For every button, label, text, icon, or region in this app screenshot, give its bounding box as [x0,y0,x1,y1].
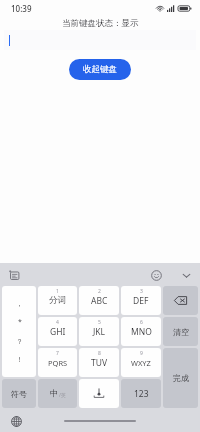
button[interactable]: Hide keyboard [177,266,195,284]
staticText: MNO [131,326,152,338]
staticText: ！ [16,355,23,364]
staticText: 10:39 [11,3,32,14]
button[interactable]: 2 [79,286,119,315]
button[interactable]: Emoji [147,266,165,284]
staticText: 2 [98,288,101,295]
staticText: ？ [16,337,23,346]
button[interactable]: 123 [121,379,161,408]
staticText: GHI [50,326,66,338]
staticText: PQRS [48,358,68,368]
button[interactable]: Punctuation [2,286,36,377]
staticText: ， [16,299,23,308]
button[interactable]: 6 [121,317,161,346]
staticText: 清空 [173,327,189,337]
staticText: JKL [93,326,106,338]
staticText: 6 [140,319,143,326]
staticText: /英 [59,392,66,399]
button[interactable]: 4 [38,317,77,346]
button[interactable]: Switch input language [9,414,23,428]
button[interactable]: Keyboard settings [5,266,23,284]
staticText: 8 [98,350,101,357]
staticText: 7 [56,350,59,357]
staticText: * [18,317,22,327]
button[interactable]: Backspace [163,286,198,315]
staticText: 3 [140,288,143,295]
staticText: 4 [56,319,59,326]
staticText: 收起键盘 [83,64,117,75]
staticText: 当前键盘状态：显示 [62,18,139,29]
button[interactable]: 完成 [163,348,198,408]
staticText: 符号 [11,389,27,399]
button[interactable] [4,30,196,50]
staticText: DEF [133,295,149,307]
button[interactable]: 5 [79,317,119,346]
button[interactable]: 7 [38,348,77,377]
staticText: 123 [134,388,149,400]
button[interactable]: 符号 [2,379,36,408]
button[interactable]: 1 [38,286,77,315]
button[interactable]: 中 [38,379,77,408]
button[interactable]: 清空 [163,317,198,346]
button[interactable]: Space [79,379,119,408]
staticText: 1 [56,288,59,295]
button[interactable]: 8 [79,348,119,377]
button[interactable]: 收起键盘 [69,59,131,80]
staticText: ABC [91,295,108,307]
staticText: TUV [91,357,108,369]
staticText: 中 [50,388,59,399]
staticText: 分词 [49,295,66,306]
staticText: 5 [98,319,101,326]
button[interactable]: 3 [121,286,161,315]
staticText: WXYZ [131,358,151,368]
staticText: 完成 [173,373,189,383]
button[interactable]: 9 [121,348,161,377]
staticText: 9 [140,350,143,357]
